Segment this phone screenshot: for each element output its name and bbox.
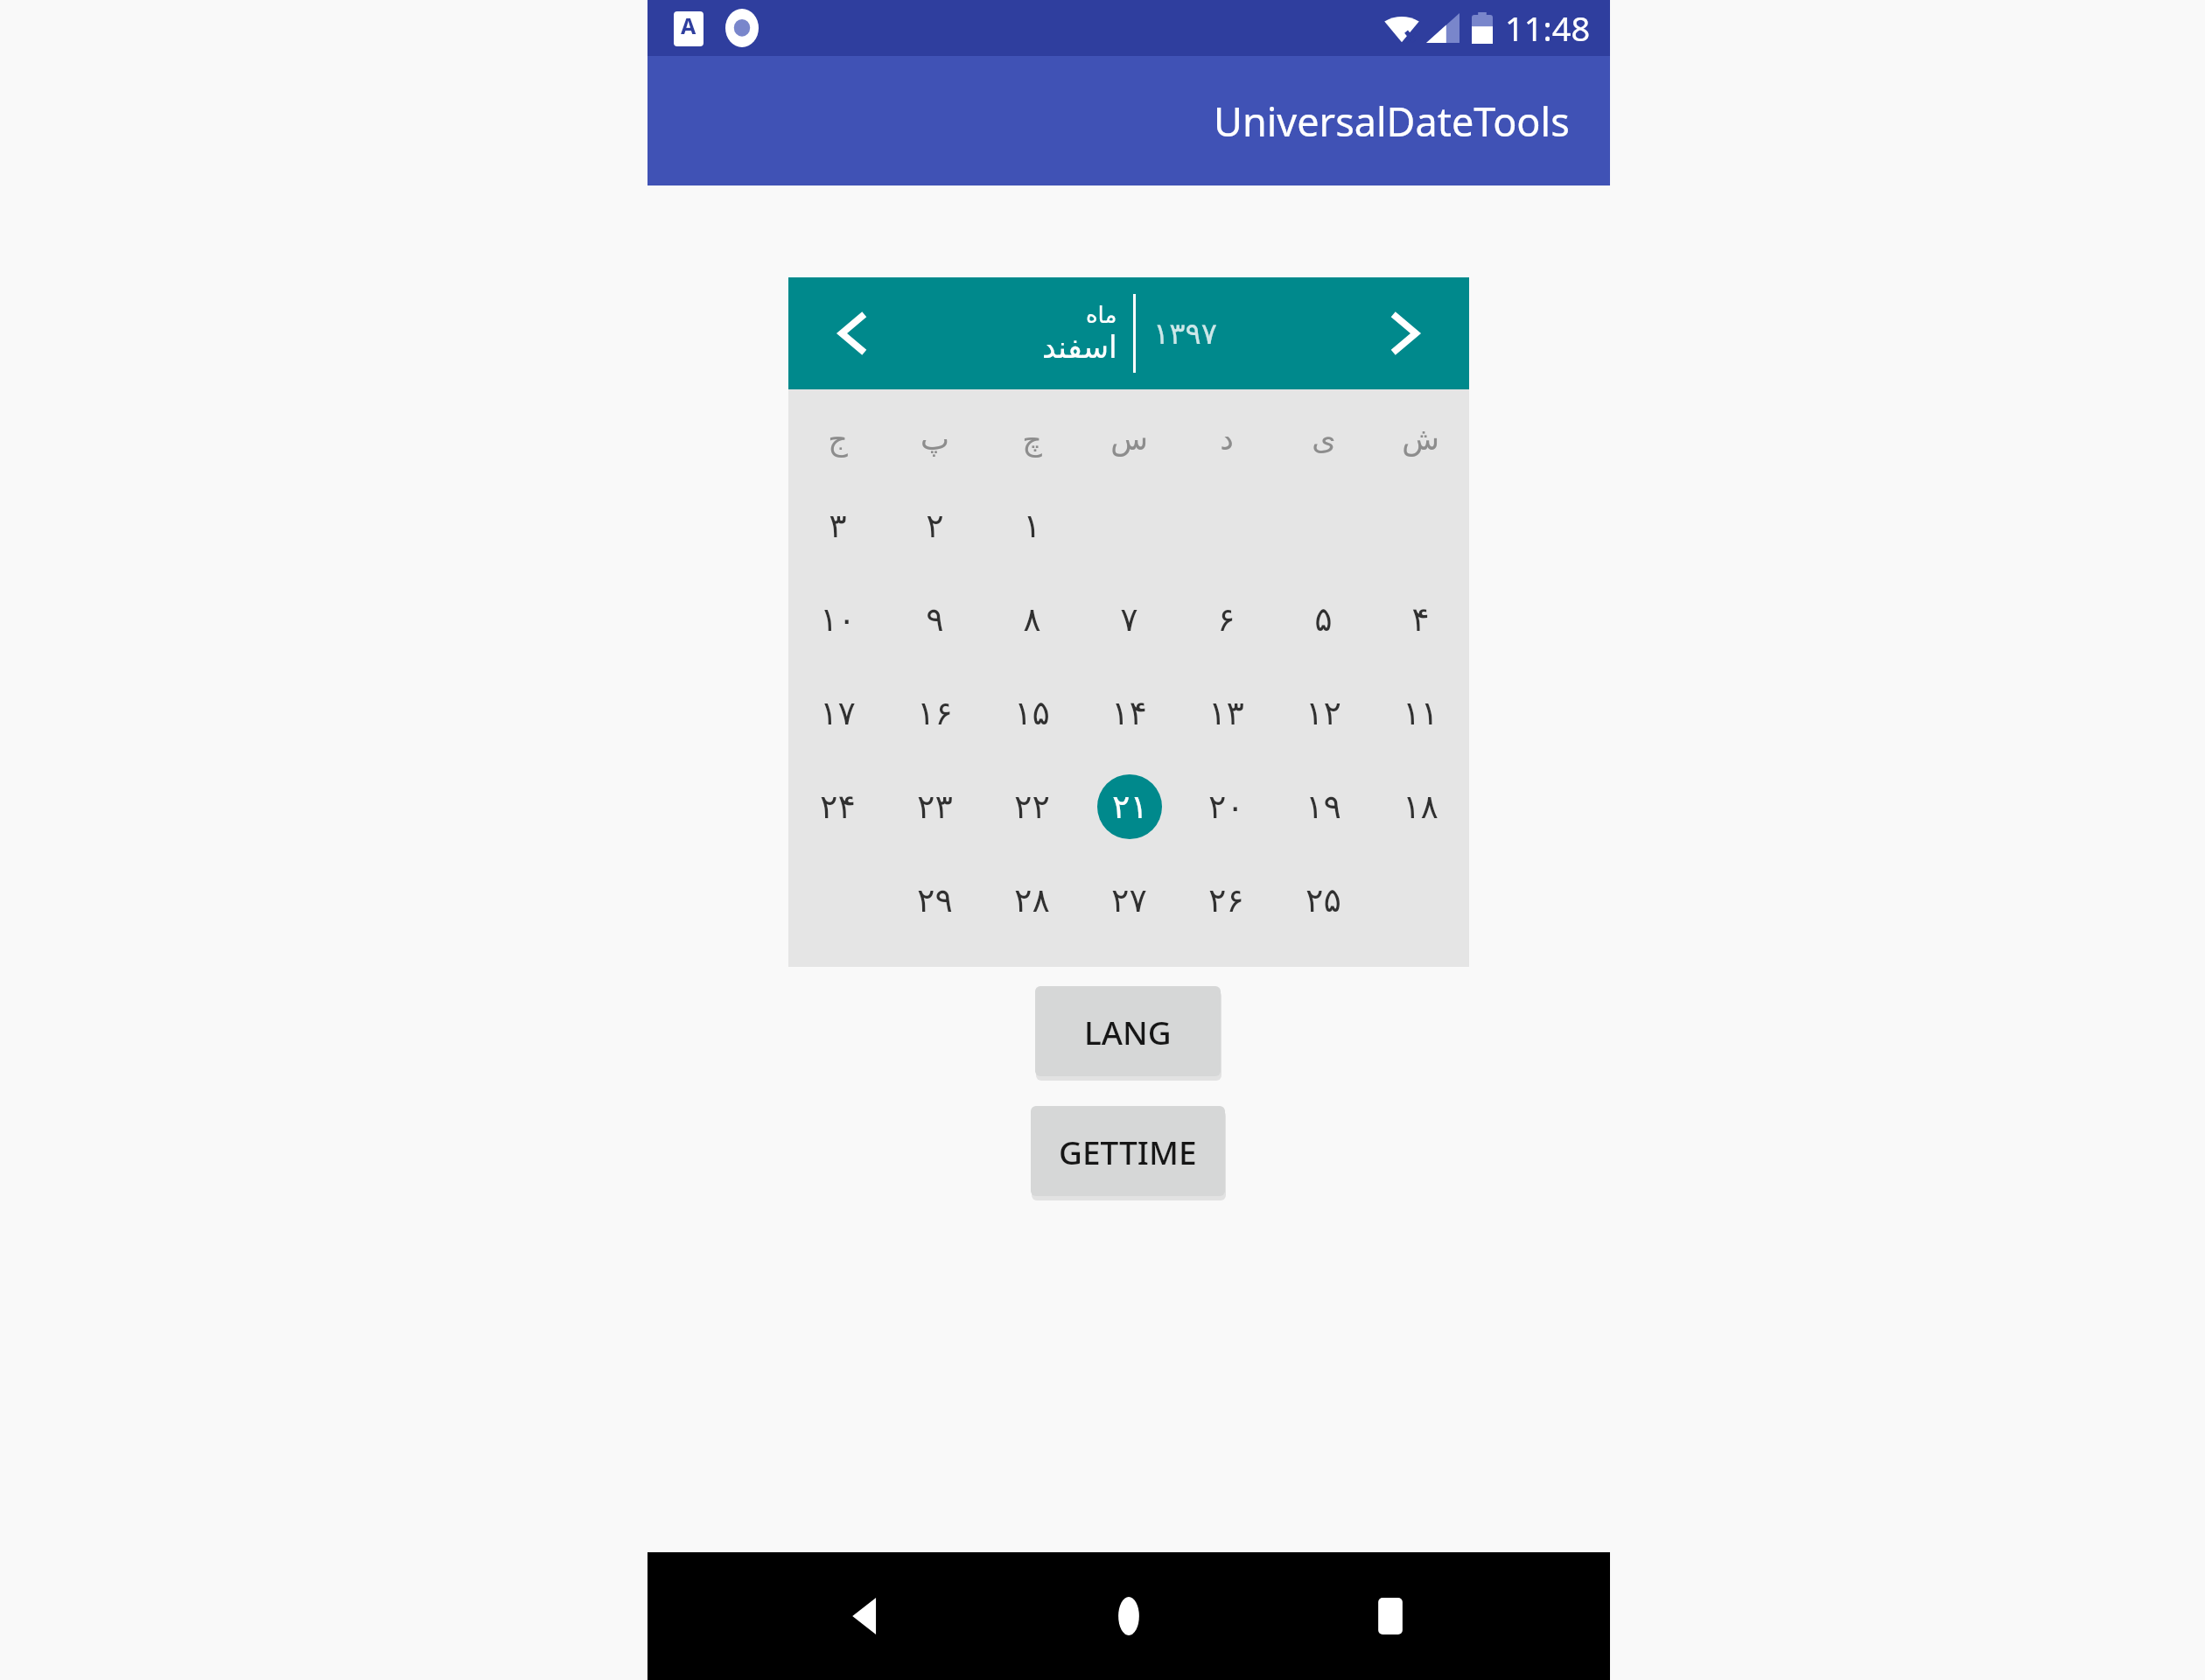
button[interactable]: Recents — [1348, 1574, 1432, 1658]
staticText: ۹ — [926, 600, 944, 639]
button[interactable]: ۴ — [1372, 572, 1469, 666]
staticText: A — [681, 10, 696, 40]
staticText: LANG — [1084, 1010, 1172, 1053]
staticText: ۱۳۹۷ — [1153, 316, 1241, 351]
button[interactable]: ۶ — [1178, 572, 1275, 666]
button[interactable]: ۲۱ — [1081, 759, 1178, 853]
staticText: ۵ — [1314, 600, 1333, 639]
staticText: ۶ — [1217, 600, 1235, 639]
button[interactable]: ۲۷ — [1081, 853, 1178, 947]
staticText: ۱۶ — [917, 694, 953, 732]
staticText: ۲۷ — [1111, 881, 1147, 920]
button[interactable]: ۱۹ — [1275, 759, 1372, 853]
button[interactable]: ۸ — [983, 572, 1081, 666]
staticText: ۱۵ — [1014, 694, 1050, 732]
staticText: ۲۰ — [1208, 787, 1244, 826]
button[interactable]: ۲۰ — [1178, 759, 1275, 853]
button[interactable]: ۲۹ — [886, 853, 983, 947]
staticText: ۱۱ — [1403, 694, 1438, 732]
staticText: ۱۳ — [1208, 694, 1244, 732]
button[interactable]: ۲ — [886, 479, 983, 572]
staticText: اسفند — [1042, 330, 1117, 366]
button[interactable]: ۱۶ — [886, 666, 983, 759]
button[interactable]: ۱ — [983, 479, 1081, 572]
button[interactable]: ۲۶ — [1178, 853, 1275, 947]
staticText: ۷ — [1120, 600, 1138, 639]
button[interactable]: Home — [1087, 1574, 1171, 1658]
staticText: ۱۰ — [820, 600, 856, 639]
staticText: ۲۳ — [917, 787, 953, 826]
staticText: ماه — [1086, 302, 1117, 328]
staticText: ۳ — [829, 507, 847, 545]
button[interactable]: ۱۴ — [1081, 666, 1178, 759]
button[interactable]: Previous month — [823, 304, 881, 362]
button[interactable]: ۲۳ — [886, 759, 983, 853]
staticText: ۱ — [1023, 507, 1041, 545]
staticText: ۲۵ — [1305, 881, 1341, 920]
staticText: چ — [1022, 422, 1042, 458]
button[interactable]: ۲۸ — [983, 853, 1081, 947]
staticText: ۱۸ — [1403, 787, 1438, 826]
button[interactable]: ۱۰ — [788, 572, 886, 666]
staticText: 11:48 — [1505, 5, 1591, 51]
staticText: UniversalDateTools — [1214, 94, 1570, 148]
staticText: ۲۲ — [1014, 787, 1050, 826]
button[interactable]: ۹ — [886, 572, 983, 666]
button[interactable]: ۱۸ — [1372, 759, 1469, 853]
staticText: ۴ — [1411, 600, 1430, 639]
staticText: ۱۷ — [820, 694, 856, 732]
button[interactable]: ۱۱ — [1372, 666, 1469, 759]
staticText: ی — [1312, 422, 1336, 458]
button[interactable]: ۳ — [788, 479, 886, 572]
button[interactable]: ۷ — [1081, 572, 1178, 666]
staticText: پ — [920, 422, 949, 458]
staticText: ۱۲ — [1305, 694, 1341, 732]
button[interactable]: ۲۲ — [983, 759, 1081, 853]
button[interactable]: ۱۲ — [1275, 666, 1372, 759]
staticText: ۲ — [926, 507, 944, 545]
staticText: ۱۴ — [1111, 694, 1147, 732]
button[interactable]: ۲۴ — [788, 759, 886, 853]
staticText: ش — [1402, 422, 1439, 458]
button[interactable]: GETTIME — [1031, 1106, 1225, 1196]
button[interactable]: LANG — [1035, 986, 1221, 1076]
button[interactable]: ۱۷ — [788, 666, 886, 759]
staticText: ۲۴ — [820, 787, 856, 826]
button[interactable]: Next month — [1376, 304, 1434, 362]
button[interactable]: Back — [825, 1574, 909, 1658]
staticText: ج — [828, 422, 848, 458]
staticText: GETTIME — [1059, 1130, 1197, 1173]
staticText: ۲۹ — [917, 881, 953, 920]
staticText: ۸ — [1023, 600, 1041, 639]
staticText: ۱۹ — [1305, 787, 1341, 826]
staticText: س — [1110, 422, 1148, 458]
staticText: ۲۸ — [1014, 881, 1050, 920]
button[interactable]: ۵ — [1275, 572, 1372, 666]
button[interactable]: ۱۵ — [983, 666, 1081, 759]
staticText: ۲۶ — [1208, 881, 1244, 920]
button[interactable]: ۱۳ — [1178, 666, 1275, 759]
staticText: ۲۱ — [1112, 787, 1148, 826]
button[interactable]: ۲۵ — [1275, 853, 1372, 947]
staticText: د — [1220, 422, 1234, 458]
